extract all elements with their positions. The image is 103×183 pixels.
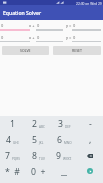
staticText: ABC xyxy=(39,125,45,129)
staticText: 0 xyxy=(1,23,4,28)
staticText: y = xyxy=(66,23,72,28)
staticText: 6 xyxy=(57,134,62,146)
button[interactable]: SOLVE xyxy=(2,46,49,55)
button[interactable]: 3 xyxy=(51,116,77,132)
staticText: DEF xyxy=(65,125,71,129)
button[interactable]: 9 xyxy=(51,148,77,164)
staticText: 0 xyxy=(73,35,76,40)
staticText: GHI xyxy=(13,141,19,145)
staticText: 0 + xyxy=(31,166,46,178)
staticText: SOLVE xyxy=(20,48,31,53)
staticText: Equation Solver xyxy=(3,10,42,17)
button[interactable]: 6 xyxy=(51,132,77,148)
staticText: 0 xyxy=(37,35,40,40)
button[interactable]: 4 xyxy=(0,132,25,148)
staticText: JKL xyxy=(39,141,44,145)
staticText: 0 xyxy=(37,23,40,28)
button[interactable]: Enter xyxy=(77,164,103,180)
staticText: 9 xyxy=(56,150,61,162)
button[interactable]: Space xyxy=(51,164,77,180)
staticText: y = xyxy=(66,35,72,40)
staticText: 0 xyxy=(73,23,76,28)
staticText: x + xyxy=(29,23,35,28)
button[interactable]: 7 xyxy=(0,148,25,164)
staticText: 1 xyxy=(10,118,15,130)
button[interactable]: 5 xyxy=(25,132,51,148)
staticText: , xyxy=(89,134,92,146)
button[interactable]: , xyxy=(77,132,103,148)
button[interactable]: 2 xyxy=(25,116,51,132)
staticText: x + xyxy=(29,35,35,40)
staticText: 3 xyxy=(58,118,63,130)
staticText: PQRS xyxy=(12,157,20,161)
button[interactable]: 8 xyxy=(25,148,51,164)
button[interactable]: 0 + xyxy=(25,164,51,180)
button[interactable]: * # xyxy=(0,164,25,180)
staticText: RESET xyxy=(72,48,83,53)
staticText: 4 xyxy=(6,134,11,146)
staticText: * # xyxy=(5,166,20,178)
staticText: TUV xyxy=(39,157,45,161)
staticText: 2 xyxy=(32,118,37,130)
staticText: MNO xyxy=(64,141,72,145)
staticText: WXYZ xyxy=(63,157,72,161)
staticText: 7 xyxy=(5,150,10,162)
staticText: - xyxy=(89,118,92,130)
staticText: 22:30 on Wed 29 xyxy=(76,1,102,5)
button[interactable]: - xyxy=(77,116,103,132)
staticText: 5 xyxy=(32,134,37,146)
staticText: 0 xyxy=(1,35,4,40)
button[interactable]: 1 xyxy=(0,116,25,132)
button[interactable]: Backspace xyxy=(77,148,103,164)
button[interactable]: RESET xyxy=(53,46,101,55)
staticText: 8 xyxy=(32,150,37,162)
